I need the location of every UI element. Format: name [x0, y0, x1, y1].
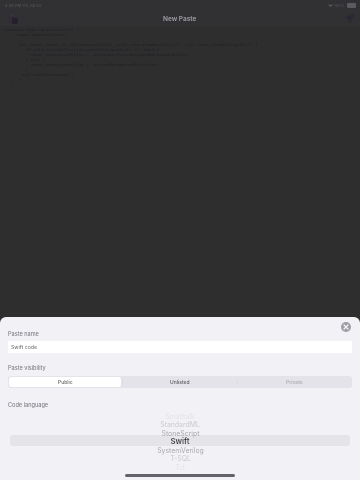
button[interactable]: Swift code — [8, 341, 352, 353]
staticText: view?.backgroundColor = .secondarySystem… — [31, 52, 187, 57]
staticText: Smalltalk — [165, 412, 195, 420]
staticText: 4:38 PM Fri Jul 30 — [5, 3, 42, 8]
staticText: StandardML — [160, 420, 200, 428]
button[interactable]: Unlisted — [122, 376, 237, 388]
staticText: 100% — [334, 3, 345, 8]
staticText: Swift code — [11, 344, 38, 350]
button[interactable]: Close — [341, 322, 351, 332]
staticText: Code language — [8, 402, 49, 409]
staticText: SystemVerilog — [157, 446, 204, 454]
staticText: Swift — [170, 436, 190, 445]
staticText: super.updateColors() — [17, 32, 68, 37]
button[interactable]: Private — [237, 376, 352, 388]
staticText: Paste name — [8, 331, 39, 338]
staticText: if self.traitCollection.userInterfaceSty… — [26, 47, 160, 52]
staticText: override func updateColors() { — [4, 27, 80, 32]
staticText: self.setNeedsLayout() — [21, 72, 74, 77]
staticText: Paste visibility — [8, 365, 46, 372]
button[interactable]: Paste — [5, 11, 20, 26]
button[interactable]: Public — [8, 376, 122, 388]
staticText: Tcl — [175, 463, 185, 471]
staticText: Unlisted — [170, 379, 190, 385]
staticText: view?.backgroundColor = .systemBackgroun… — [31, 62, 157, 67]
staticText: for (name, view) in zip(sectionTitles, s… — [19, 42, 258, 47]
staticText: Public — [58, 379, 73, 385]
staticText: New Paste — [163, 15, 197, 23]
staticText: Private — [286, 379, 303, 385]
staticText: StoneScript — [161, 429, 200, 437]
button[interactable]: Send — [342, 11, 357, 26]
staticText: T-SQL — [170, 454, 191, 462]
